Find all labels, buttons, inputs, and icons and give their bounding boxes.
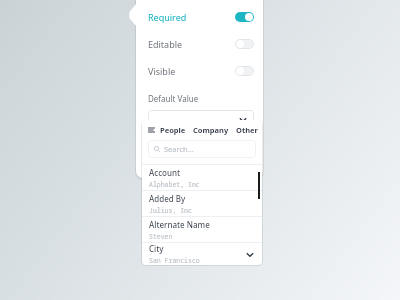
button[interactable]: — — [148, 110, 254, 129]
staticText: Search... — [164, 144, 194, 154]
staticText: Required — [148, 11, 187, 23]
button[interactable]: Search... — [148, 140, 256, 158]
staticText: Alphabet, Inc — [149, 180, 200, 189]
staticText: San Francisco — [149, 256, 200, 265]
button[interactable]: Alternate Name — [142, 216, 262, 242]
button[interactable]: Menu — [148, 127, 155, 133]
staticText: Julius, Inc — [149, 206, 192, 215]
button[interactable]: Company — [193, 125, 229, 135]
staticText: Alternate Name — [149, 219, 210, 230]
staticText: Visible — [148, 65, 176, 77]
button[interactable]: Added By — [142, 190, 262, 216]
button[interactable]: Required — [148, 5, 254, 29]
button[interactable]: Editable — [148, 32, 254, 56]
staticText: Added By — [149, 193, 186, 204]
staticText: Default Value — [148, 93, 199, 104]
button[interactable]: Visible — [148, 59, 254, 83]
button[interactable]: People — [160, 125, 186, 135]
button[interactable]: Other — [236, 125, 258, 135]
staticText: Steven — [149, 232, 173, 241]
button[interactable]: Account — [142, 164, 262, 190]
staticText: City — [149, 243, 164, 254]
staticText: Account — [149, 167, 181, 178]
button[interactable]: City — [142, 242, 262, 265]
staticText: Field Mapping — [148, 141, 202, 152]
staticText: Editable — [148, 38, 183, 50]
